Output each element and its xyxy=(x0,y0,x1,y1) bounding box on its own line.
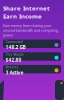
button[interactable]: Connected xyxy=(3,39,61,48)
staticText: Earn Income xyxy=(3,12,42,20)
staticText: Connected xyxy=(5,39,22,44)
staticText: 148.2 GB xyxy=(5,44,25,50)
button[interactable]: Devices xyxy=(3,65,61,73)
staticText: This Month xyxy=(5,52,23,57)
staticText: Devices xyxy=(5,65,18,69)
staticText: $42.80 xyxy=(5,57,21,63)
staticText: Earn money from sharing your unused band… xyxy=(3,23,58,37)
staticText: 3 Active xyxy=(5,69,23,76)
staticText: Share Internet xyxy=(3,4,50,12)
button[interactable]: This Month xyxy=(3,52,61,61)
